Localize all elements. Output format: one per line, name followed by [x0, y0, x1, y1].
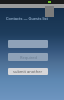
button[interactable]: Required: [8, 53, 48, 61]
button[interactable]: submit another: [8, 68, 48, 75]
staticText: submit another: [13, 69, 43, 74]
staticText: Required: [20, 55, 37, 60]
staticText: Contacts — Guests list: [6, 16, 48, 21]
